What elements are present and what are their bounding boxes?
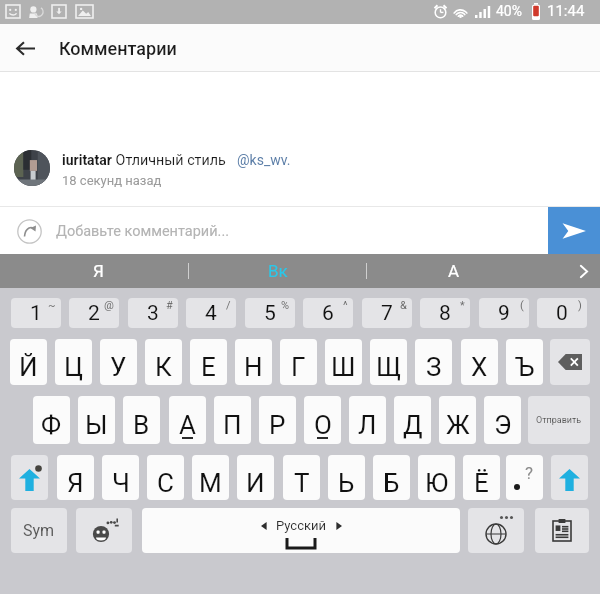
button[interactable]: Clipboard (535, 508, 589, 553)
button[interactable]: С (147, 455, 184, 500)
button[interactable]: Р (259, 396, 296, 444)
staticText: Ш (331, 352, 356, 382)
staticText: С (157, 468, 174, 498)
staticText: Ц (64, 352, 84, 382)
button[interactable]: У (100, 339, 137, 385)
button[interactable]: Shift (11, 455, 48, 500)
button[interactable]: Backspace (550, 339, 590, 385)
button[interactable]: М (192, 455, 229, 500)
button[interactable]: Ж (439, 396, 476, 444)
button[interactable]: Sym (11, 508, 67, 553)
button[interactable]: А (367, 254, 566, 288)
staticText: А (179, 410, 196, 440)
button[interactable]: Б (373, 455, 410, 500)
staticText: 9 (498, 301, 510, 326)
staticText: @ks_wv. (237, 152, 291, 168)
button[interactable]: Ч (102, 455, 139, 500)
button[interactable]: Ы (78, 396, 115, 444)
staticText: Н (244, 352, 263, 382)
button[interactable]: Л (349, 396, 386, 444)
staticText: Г (291, 352, 306, 382)
button[interactable]: Н (235, 339, 272, 385)
button[interactable]: 4 (186, 298, 236, 328)
button[interactable]: Я (57, 455, 94, 500)
button[interactable]: 5 (245, 298, 295, 328)
button[interactable]: Switch language (468, 508, 524, 553)
button[interactable]: Я (0, 254, 188, 288)
staticText: ^ (343, 299, 348, 312)
button[interactable]: 9 (479, 298, 529, 328)
staticText: Й (19, 352, 38, 382)
button[interactable]: К (145, 339, 182, 385)
button[interactable]: Е (190, 339, 227, 385)
staticText: ? (525, 463, 534, 483)
button[interactable]: 3 (128, 298, 178, 328)
staticText: К (155, 352, 172, 382)
staticText: ) (578, 299, 582, 312)
staticText: 6 (322, 301, 334, 326)
staticText: Р (269, 410, 286, 440)
button[interactable]: Х (461, 339, 498, 385)
staticText: А (448, 261, 460, 281)
staticText: Комментарии (59, 38, 177, 59)
staticText: ~ (48, 299, 56, 312)
button[interactable]: Ъ (506, 339, 543, 385)
button[interactable]: Отправить (528, 396, 590, 444)
staticText: 0 (556, 301, 568, 326)
staticText: Ю (425, 468, 449, 498)
button[interactable]: Emoji (76, 508, 132, 553)
button[interactable]: Ю (418, 455, 455, 500)
staticText: И (246, 468, 265, 498)
button[interactable]: Ё (463, 455, 500, 500)
button[interactable]: Г (280, 339, 317, 385)
button[interactable]: Й (10, 339, 47, 385)
button[interactable]: Э (484, 396, 521, 444)
button[interactable]: П (214, 396, 251, 444)
button[interactable]: Ш (325, 339, 362, 385)
staticText: 11:44 (547, 2, 585, 20)
button[interactable]: Щ (370, 339, 407, 385)
button[interactable]: 0 (537, 298, 587, 328)
staticText: 18 секунд назад (62, 173, 162, 188)
staticText: * (460, 299, 465, 312)
button[interactable]: 1 (11, 298, 61, 328)
button[interactable]: Д (394, 396, 431, 444)
button[interactable]: А (169, 396, 206, 444)
button[interactable]: Добавьте комментарий... (0, 207, 548, 255)
staticText: 40% (496, 3, 522, 19)
staticText: Ъ (515, 352, 535, 382)
staticText: Добавьте комментарий... (56, 223, 230, 240)
button[interactable]: ? (506, 455, 543, 500)
button[interactable]: Ц (55, 339, 92, 385)
staticText: ( (520, 299, 524, 312)
button[interactable]: Shift (551, 455, 588, 500)
staticText: Отправить (536, 415, 582, 426)
button[interactable]: О (304, 396, 341, 444)
button[interactable]: Т (283, 455, 320, 500)
button[interactable]: More suggestions (566, 254, 600, 288)
button[interactable]: Ф (33, 396, 70, 444)
button[interactable]: Вк (189, 254, 366, 288)
staticText: О (314, 410, 332, 440)
button[interactable]: Send (548, 207, 600, 255)
staticText: Отличный стиль (112, 152, 237, 169)
staticText: Э (494, 410, 512, 440)
staticText: Ё (474, 468, 489, 498)
staticText: Т (294, 468, 310, 498)
staticText: Б (383, 468, 400, 498)
button[interactable]: Русский (142, 508, 460, 553)
button[interactable]: 6 (303, 298, 353, 328)
staticText: Щ (376, 352, 402, 382)
button[interactable]: 8 (420, 298, 470, 328)
staticText: 2 (88, 301, 100, 326)
staticText: У (110, 352, 127, 382)
staticText: 1 (30, 301, 42, 326)
button[interactable]: 7 (362, 298, 412, 328)
staticText: / (226, 299, 231, 312)
button[interactable]: 2 (69, 298, 119, 328)
button[interactable]: Ь (328, 455, 365, 500)
button[interactable]: З (415, 339, 452, 385)
button[interactable]: И (237, 455, 274, 500)
button[interactable]: В (123, 396, 160, 444)
button[interactable]: Back (0, 24, 48, 72)
